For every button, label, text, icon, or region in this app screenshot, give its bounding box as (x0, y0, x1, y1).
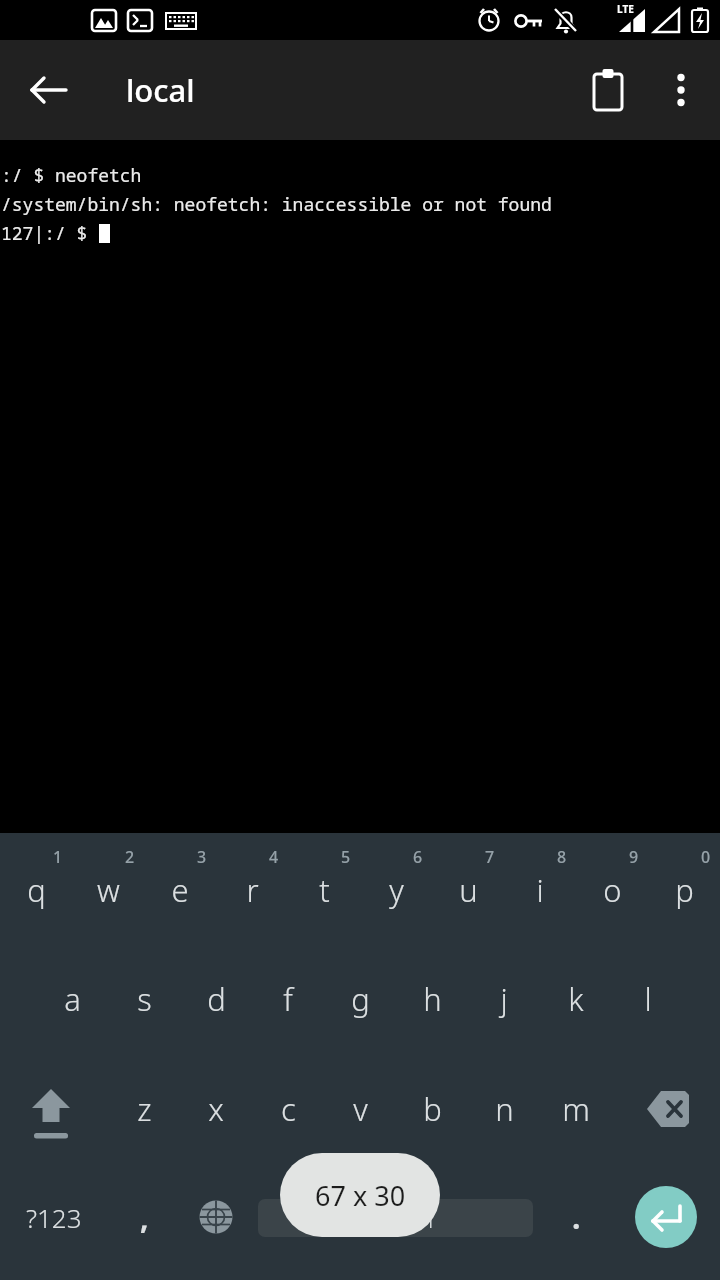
button[interactable]: Change keyboard language (180, 1185, 252, 1249)
staticText: u (459, 869, 478, 911)
button[interactable]: l (612, 967, 684, 1031)
staticText: LTE (617, 2, 634, 16)
staticText: 7 (485, 846, 495, 868)
button[interactable]: m (540, 1077, 612, 1141)
button[interactable]: u (432, 858, 504, 922)
button[interactable]: v (324, 1077, 396, 1141)
button[interactable]: Paste from clipboard (579, 61, 637, 119)
staticText: f (283, 978, 293, 1020)
button[interactable]: b (396, 1077, 468, 1141)
staticText: t (319, 869, 330, 911)
button[interactable]: w (72, 858, 144, 922)
button[interactable]: x (180, 1077, 252, 1141)
staticText: n (495, 1088, 514, 1130)
staticText: j (500, 978, 508, 1020)
button[interactable]: ?123 (18, 1185, 90, 1249)
staticText: . (572, 1197, 581, 1238)
staticText: o (603, 869, 622, 911)
staticText: 1 (53, 846, 63, 868)
staticText: 9 (629, 846, 639, 868)
staticText: 8 (557, 846, 567, 868)
staticText: m (562, 1088, 590, 1130)
button[interactable]: . (540, 1185, 612, 1249)
button[interactable]: Back (20, 61, 78, 119)
button[interactable]: Backspace (634, 1077, 706, 1141)
staticText: :/ $ neofetch (1, 163, 142, 188)
button[interactable]: y (360, 858, 432, 922)
button[interactable]: c (252, 1077, 324, 1141)
button[interactable]: h (396, 967, 468, 1031)
staticText: 3 (197, 846, 207, 868)
staticText: r (246, 869, 259, 911)
button[interactable]: Shift (15, 1077, 87, 1141)
staticText: s (137, 978, 152, 1020)
staticText: d (207, 978, 226, 1020)
button[interactable]: r (216, 858, 288, 922)
staticText: local (126, 69, 195, 111)
staticText: 0 (701, 846, 711, 868)
staticText: z (137, 1088, 152, 1130)
button[interactable]: d (180, 967, 252, 1031)
button[interactable]: Enter (635, 1186, 697, 1248)
staticText: b (423, 1088, 442, 1130)
staticText: /system/bin/sh: neofetch: inaccessible o… (1, 192, 552, 217)
button[interactable]: t (288, 858, 360, 922)
staticText: , (140, 1197, 149, 1238)
staticText: y (389, 869, 404, 911)
staticText: x (208, 1088, 224, 1130)
staticText: v (353, 1088, 368, 1130)
staticText: 2 (125, 846, 135, 868)
staticText: k (568, 978, 584, 1020)
button[interactable]: o (576, 858, 648, 922)
staticText: 127|:/ $ (1, 221, 99, 246)
staticText: 4 (269, 846, 279, 868)
staticText: w (97, 869, 120, 911)
staticText: h (423, 978, 442, 1020)
button[interactable]: n (468, 1077, 540, 1141)
staticText: p (675, 869, 694, 911)
staticText: l (644, 978, 652, 1020)
staticText: a (64, 978, 81, 1020)
staticText: 5 (341, 846, 351, 868)
staticText: e (171, 869, 189, 911)
button[interactable]: q (0, 858, 72, 922)
staticText: 67 x 30 (315, 1177, 406, 1214)
button[interactable]: s (108, 967, 180, 1031)
button[interactable]: English (258, 1199, 533, 1237)
staticText: 6 (413, 846, 423, 868)
button[interactable]: e (144, 858, 216, 922)
button[interactable]: a (36, 967, 108, 1031)
button[interactable]: More options (652, 61, 710, 119)
staticText: c (281, 1088, 296, 1130)
button[interactable]: p (648, 858, 720, 922)
button[interactable]: f (252, 967, 324, 1031)
staticText: g (351, 978, 370, 1020)
staticText: q (27, 869, 46, 911)
button[interactable]: , (108, 1185, 180, 1249)
button[interactable]: z (108, 1077, 180, 1141)
staticText: English (358, 1203, 434, 1234)
staticText: i (536, 869, 544, 911)
button[interactable]: k (540, 967, 612, 1031)
button[interactable]: g (324, 967, 396, 1031)
staticText: ?123 (26, 1200, 82, 1235)
button[interactable]: i (504, 858, 576, 922)
button[interactable]: j (468, 967, 540, 1031)
